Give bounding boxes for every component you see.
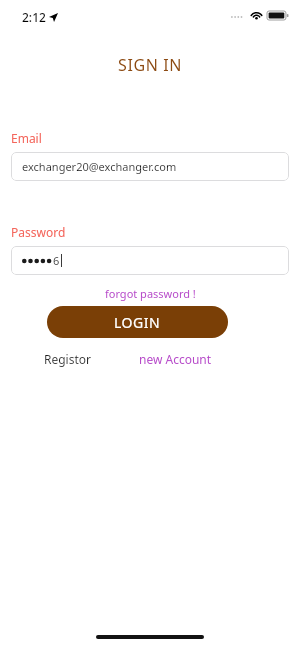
button[interactable]: forgot password !	[101, 284, 200, 303]
staticText: Email	[11, 130, 42, 146]
button[interactable]: Registor	[44, 351, 92, 367]
button[interactable]: 6	[11, 246, 289, 275]
button[interactable]: new Account	[139, 351, 212, 367]
button[interactable]: LOGIN	[47, 306, 228, 338]
staticText: exchanger20@exchanger.com	[22, 159, 177, 174]
staticText: forgot password !	[105, 286, 196, 301]
staticText: Password	[11, 224, 66, 240]
staticText: 6	[53, 253, 60, 268]
staticText: Registor	[44, 351, 92, 367]
staticText: 2:12	[22, 9, 46, 25]
staticText: new Account	[139, 351, 212, 367]
staticText: SIGN IN	[118, 54, 182, 76]
button[interactable]: exchanger20@exchanger.com	[11, 152, 289, 181]
staticText: LOGIN	[114, 313, 161, 332]
